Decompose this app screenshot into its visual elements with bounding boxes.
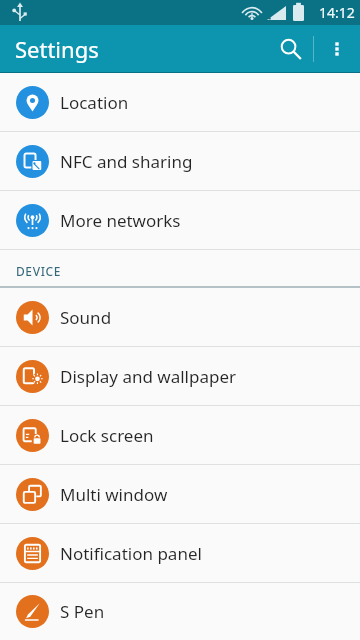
button[interactable]: More networks [0,191,360,249]
staticText: S Pen [60,600,105,623]
staticText: Location [60,91,129,114]
staticText: Lock screen [60,424,154,447]
button[interactable]: Lock screen [0,406,360,464]
button[interactable]: NFC and sharing [0,132,360,190]
staticText: NFC and sharing [60,150,193,173]
button[interactable]: Search [267,26,313,72]
button[interactable]: Display and wallpaper [0,347,360,405]
staticText: Display and wallpaper [60,365,237,388]
staticText: Multi window [60,483,168,506]
button[interactable]: Multi window [0,465,360,523]
button[interactable]: More options [314,26,360,72]
button[interactable]: S Pen [0,583,360,640]
staticText: 14:12 [319,3,355,22]
staticText: DEVICE [16,263,61,279]
button[interactable]: Location [0,73,360,131]
staticText: Settings [15,34,99,64]
button[interactable]: Sound [0,288,360,346]
staticText: Sound [60,306,112,329]
staticText: More networks [60,209,181,232]
staticText: Notification panel [60,542,202,565]
button[interactable]: Notification panel [0,524,360,582]
